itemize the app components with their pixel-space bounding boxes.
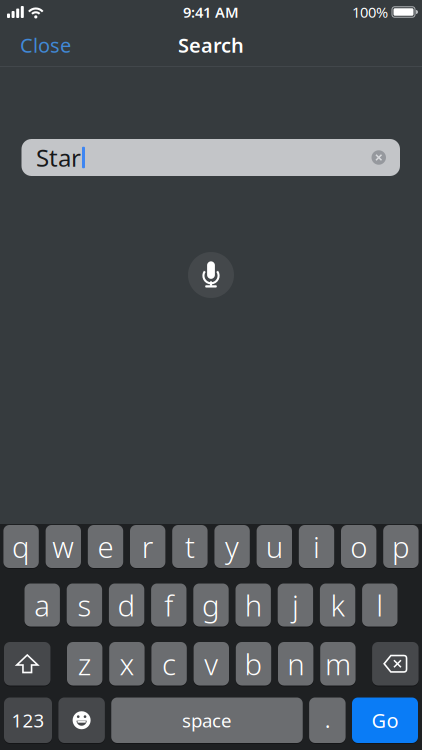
staticText: 9:41 AM: [183, 2, 239, 22]
staticText: Close: [20, 32, 71, 58]
staticText: d: [118, 585, 136, 624]
button[interactable]: .: [309, 697, 346, 744]
button[interactable]: w: [46, 525, 81, 569]
button[interactable]: g: [193, 583, 229, 627]
button[interactable]: e: [88, 525, 123, 569]
staticText: Search: [178, 32, 244, 58]
button[interactable]: j: [278, 583, 313, 627]
staticText: v: [204, 644, 218, 683]
button[interactable]: x: [109, 642, 145, 686]
staticText: e: [97, 527, 113, 566]
button[interactable]: f: [151, 583, 186, 627]
button[interactable]: y: [214, 525, 250, 569]
button[interactable]: Shift: [4, 642, 50, 686]
staticText: r: [142, 527, 154, 566]
staticText: g: [202, 585, 220, 624]
staticText: y: [225, 527, 239, 566]
staticText: p: [392, 527, 410, 566]
button[interactable]: 123: [4, 697, 52, 744]
staticText: l: [376, 585, 383, 624]
staticText: h: [245, 585, 262, 624]
button[interactable]: q: [3, 525, 39, 569]
button[interactable]: space: [111, 697, 303, 744]
button[interactable]: Dictate: [188, 252, 234, 298]
button[interactable]: a: [24, 583, 60, 627]
button[interactable]: z: [67, 642, 102, 686]
staticText: m: [325, 644, 351, 683]
button[interactable]: n: [278, 642, 313, 686]
button[interactable]: c: [151, 642, 187, 686]
button[interactable]: i: [299, 525, 334, 569]
button[interactable]: k: [320, 583, 355, 627]
button[interactable]: Go: [352, 697, 418, 744]
staticText: space: [182, 708, 232, 733]
button[interactable]: l: [362, 583, 397, 627]
staticText: c: [162, 644, 176, 683]
staticText: j: [292, 585, 299, 624]
staticText: f: [164, 585, 173, 624]
staticText: .: [325, 707, 330, 734]
staticText: q: [12, 527, 30, 566]
staticText: w: [52, 527, 74, 566]
staticText: t: [185, 527, 195, 566]
button[interactable]: o: [341, 525, 376, 569]
staticText: a: [34, 585, 50, 624]
button[interactable]: h: [235, 583, 271, 627]
button[interactable]: d: [109, 583, 144, 627]
button[interactable]: s: [67, 583, 102, 627]
staticText: b: [244, 644, 262, 683]
staticText: x: [119, 644, 134, 683]
button[interactable]: m: [320, 642, 356, 686]
button[interactable]: Close: [20, 32, 71, 58]
staticText: s: [77, 585, 91, 624]
button[interactable]: Emoji: [58, 697, 105, 744]
button[interactable]: Clear text: [371, 150, 386, 165]
staticText: i: [313, 527, 320, 566]
staticText: n: [287, 644, 304, 683]
staticText: z: [78, 644, 92, 683]
button[interactable]: r: [130, 525, 165, 569]
button[interactable]: u: [257, 525, 292, 569]
staticText: 100%: [352, 2, 388, 22]
staticText: o: [350, 527, 367, 566]
staticText: Go: [371, 707, 398, 734]
staticText: k: [331, 585, 345, 624]
button[interactable]: p: [383, 525, 419, 569]
staticText: Star: [36, 142, 81, 173]
staticText: u: [266, 527, 283, 566]
button[interactable]: t: [172, 525, 208, 569]
staticText: 123: [11, 708, 44, 733]
button[interactable]: v: [194, 642, 229, 686]
button[interactable]: b: [236, 642, 271, 686]
button[interactable]: Delete: [372, 642, 419, 686]
